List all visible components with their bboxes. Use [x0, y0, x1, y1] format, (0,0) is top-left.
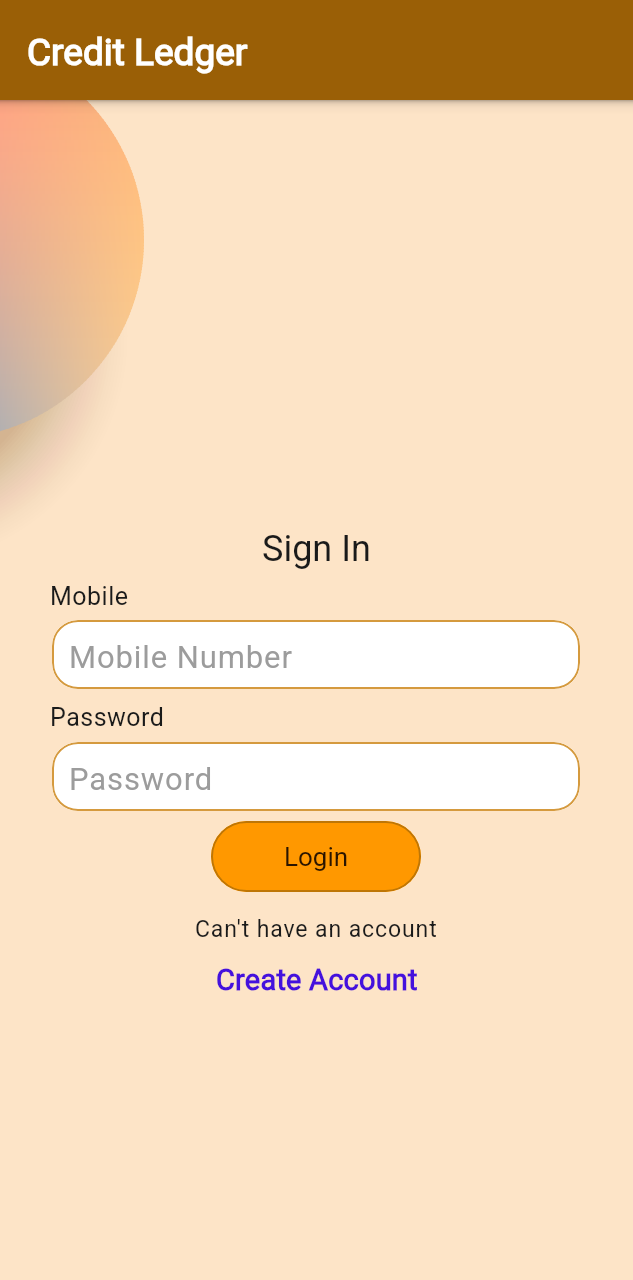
staticText: Password [50, 703, 165, 732]
staticText: Login [284, 842, 349, 872]
staticText: Credit Ledger [27, 31, 248, 74]
staticText: Password [69, 761, 214, 797]
button[interactable]: Password [52, 742, 580, 811]
staticText: Create Account [216, 963, 418, 997]
button[interactable]: Mobile Number [52, 620, 580, 689]
button[interactable]: Create Account [216, 963, 418, 997]
button[interactable]: Login [211, 821, 421, 892]
staticText: Mobile [50, 582, 129, 611]
staticText: Mobile Number [69, 639, 293, 675]
staticText: Can't have an account [195, 916, 438, 943]
staticText: Sign In [262, 528, 371, 570]
